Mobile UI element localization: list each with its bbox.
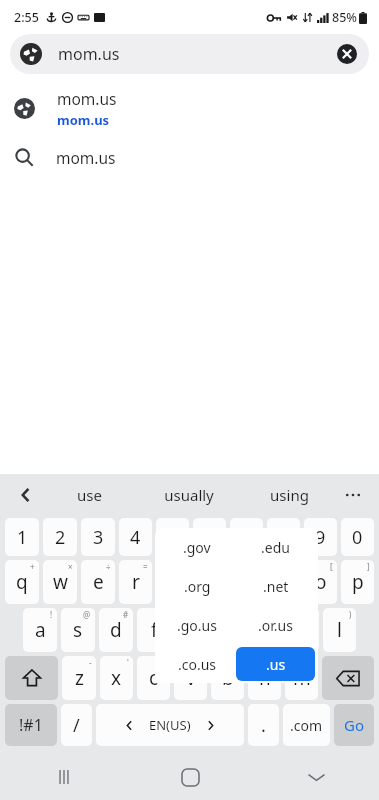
button[interactable]: .edu	[236, 530, 315, 565]
button[interactable]: !#1	[5, 704, 57, 746]
button[interactable]: ,	[248, 656, 281, 700]
button[interactable]: @	[61, 608, 95, 652]
staticText: l	[337, 617, 342, 643]
button[interactable]: mom.us	[0, 134, 379, 180]
button[interactable]: '	[100, 656, 133, 700]
button[interactable]: .net	[236, 569, 315, 604]
button[interactable]: "	[137, 656, 170, 700]
button[interactable]: )	[323, 608, 356, 652]
button[interactable]: .org	[158, 569, 236, 604]
button[interactable]: .	[248, 704, 279, 746]
staticText: !#1	[19, 714, 43, 736]
button[interactable]: Clear text	[333, 40, 361, 68]
button[interactable]: EN(US)	[96, 704, 244, 746]
staticText: y	[205, 569, 215, 595]
staticText: ÷	[106, 561, 111, 572]
button[interactable]: [	[304, 560, 337, 604]
staticText: o	[315, 569, 327, 595]
staticText: .gov	[183, 538, 211, 557]
button[interactable]: Recent apps	[0, 754, 127, 800]
button[interactable]: .go.us	[158, 608, 236, 643]
button[interactable]: using	[239, 474, 339, 516]
button[interactable]: >	[267, 560, 300, 604]
staticText: w	[53, 569, 68, 595]
button[interactable]: .us	[236, 647, 315, 681]
button[interactable]: %	[175, 608, 208, 652]
staticText: use	[77, 485, 102, 505]
button[interactable]: (	[286, 608, 319, 652]
button[interactable]: $	[137, 608, 171, 652]
staticText: z	[75, 665, 84, 691]
button[interactable]: 9	[304, 518, 337, 556]
button[interactable]: .gov	[158, 530, 236, 565]
button[interactable]: Go	[334, 704, 374, 746]
button[interactable]: Hide keyboard	[253, 754, 379, 800]
button[interactable]: :	[174, 656, 207, 700]
button[interactable]: mom.us	[0, 82, 379, 134]
staticText: +	[30, 561, 35, 572]
button[interactable]: #	[99, 608, 133, 652]
button[interactable]: /	[61, 704, 92, 746]
staticText: .	[261, 713, 266, 738]
button[interactable]: +	[5, 560, 39, 604]
button[interactable]: &	[212, 608, 245, 652]
staticText: d	[110, 617, 122, 643]
button[interactable]: mom.us	[10, 34, 369, 74]
button[interactable]: usually	[139, 474, 239, 516]
button[interactable]: More suggestions	[335, 477, 371, 513]
staticText: @	[83, 609, 91, 620]
staticText: i	[281, 569, 286, 595]
button[interactable]: -	[62, 656, 96, 700]
staticText: s	[73, 617, 83, 643]
button[interactable]: *	[249, 608, 282, 652]
button[interactable]: Home	[127, 754, 253, 800]
button[interactable]: 6	[193, 518, 226, 556]
button[interactable]: use	[40, 474, 139, 516]
button[interactable]: 1	[5, 518, 39, 556]
staticText: 85%	[332, 9, 357, 26]
button[interactable]: 8	[267, 518, 300, 556]
staticText: .edu	[261, 538, 290, 557]
button[interactable]: Previous suggestions	[8, 477, 44, 513]
button[interactable]: =	[119, 560, 152, 604]
button[interactable]: .or.us	[236, 608, 315, 643]
staticText: m	[293, 665, 311, 691]
button[interactable]: 3	[81, 518, 115, 556]
button[interactable]: ;	[211, 656, 244, 700]
button[interactable]: 7	[230, 518, 263, 556]
button[interactable]: 4	[119, 518, 152, 556]
staticText: x	[111, 665, 122, 691]
button[interactable]: /	[156, 560, 189, 604]
button[interactable]: ÷	[81, 560, 115, 604]
staticText: mom.us	[56, 147, 116, 168]
staticText: ×	[68, 561, 73, 572]
button[interactable]: ×	[43, 560, 77, 604]
button[interactable]: _	[193, 560, 226, 604]
staticText: usually	[164, 485, 214, 505]
button[interactable]: .com	[283, 704, 330, 746]
button[interactable]: !	[23, 608, 57, 652]
button[interactable]: ?	[285, 656, 318, 700]
button[interactable]: Shift	[5, 656, 58, 700]
staticText: .com	[290, 716, 323, 735]
button[interactable]: Backspace	[322, 656, 374, 700]
staticText: 9	[315, 525, 326, 550]
button[interactable]: .co.us	[158, 647, 236, 681]
staticText: -	[89, 657, 92, 668]
button[interactable]: 5	[156, 518, 189, 556]
staticText: r	[132, 569, 140, 595]
button[interactable]: 2	[43, 518, 77, 556]
button[interactable]: ]	[341, 560, 374, 604]
button[interactable]: 0	[341, 518, 374, 556]
